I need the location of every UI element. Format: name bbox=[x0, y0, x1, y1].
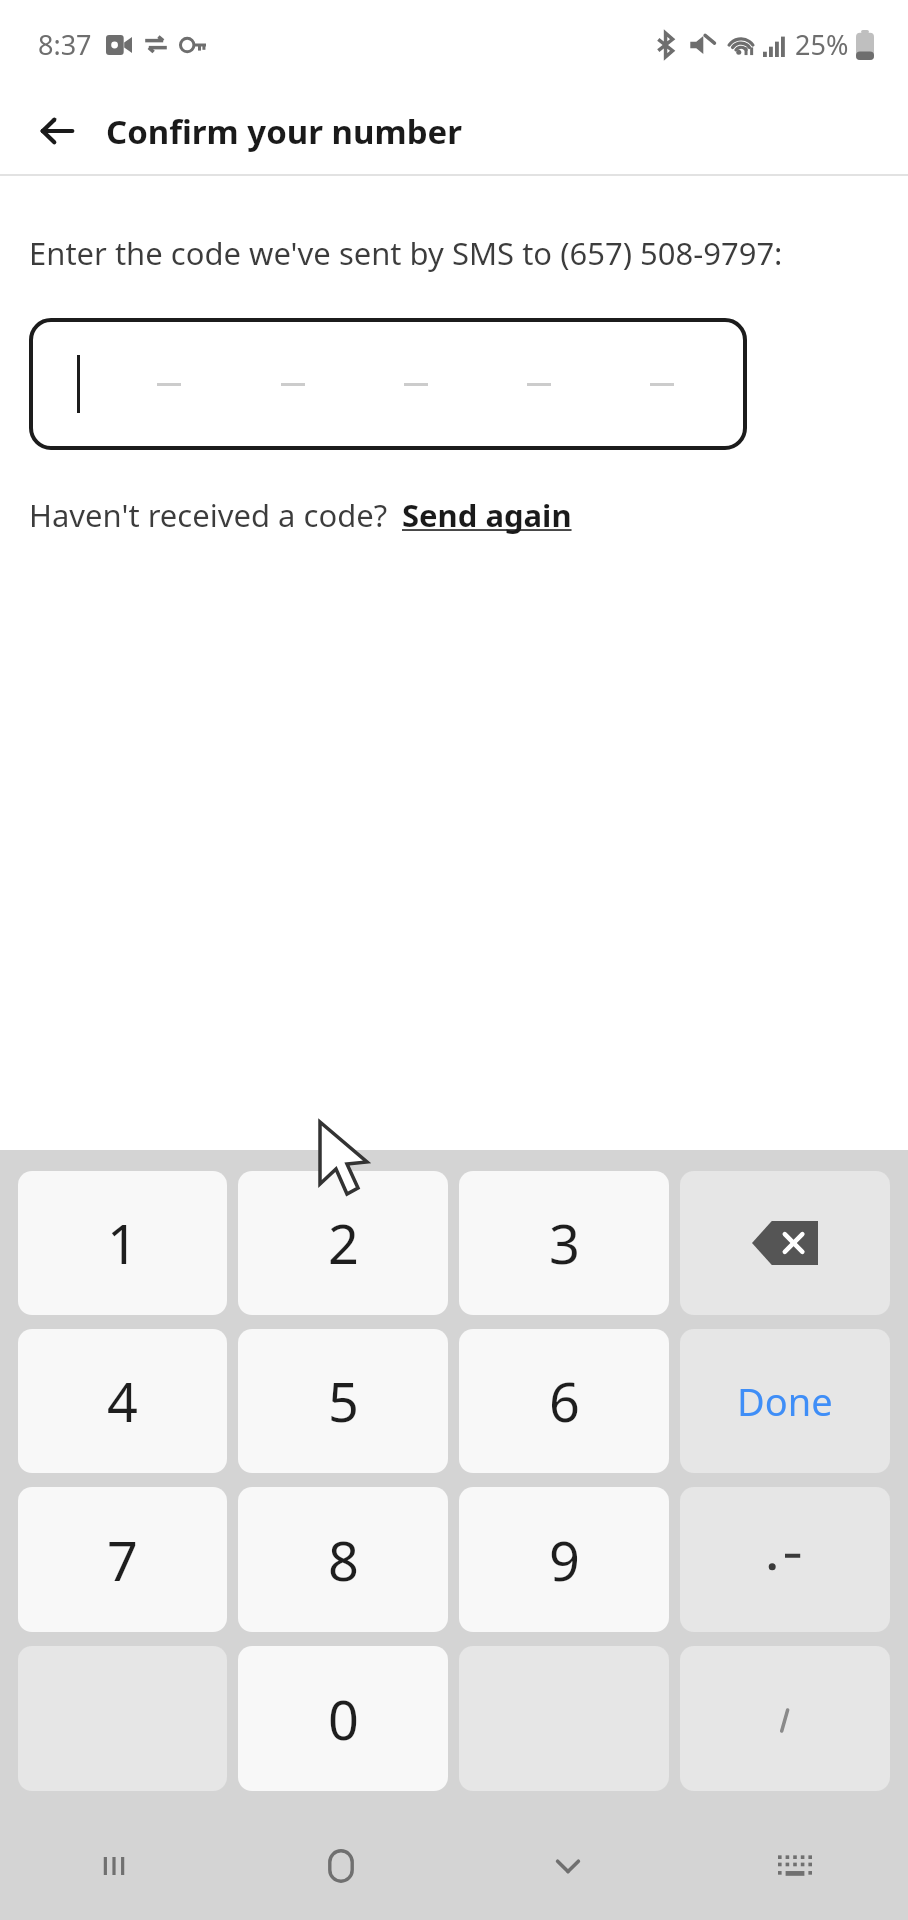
button[interactable]: 3 bbox=[459, 1171, 669, 1315]
button[interactable]: Hide keyboard bbox=[454, 1812, 681, 1920]
button[interactable]: 4 bbox=[18, 1329, 227, 1473]
button[interactable]: Switch keyboard bbox=[681, 1812, 908, 1920]
staticText: 8:37 bbox=[38, 26, 92, 63]
button[interactable]: 0 bbox=[238, 1646, 448, 1791]
staticText: Send again bbox=[402, 494, 572, 536]
button[interactable]: 8 bbox=[238, 1487, 448, 1632]
button[interactable]: 6 bbox=[459, 1329, 669, 1473]
staticText: 5 bbox=[328, 1364, 359, 1438]
button[interactable]: Backspace bbox=[680, 1171, 890, 1315]
staticText: 9 bbox=[549, 1523, 580, 1597]
staticText: Done bbox=[737, 1375, 833, 1427]
staticText: Haven't received a code? bbox=[29, 494, 388, 536]
staticText: Confirm your number bbox=[106, 109, 463, 154]
staticText: 6 bbox=[549, 1364, 580, 1438]
button[interactable]: 2 bbox=[238, 1171, 448, 1315]
staticText: 3 bbox=[549, 1206, 580, 1280]
button[interactable]: 5 bbox=[238, 1329, 448, 1473]
staticText: 7 bbox=[107, 1523, 138, 1597]
button[interactable]: Home bbox=[227, 1812, 454, 1920]
staticText: 4 bbox=[107, 1364, 138, 1438]
staticText: Enter the code we've sent by SMS to (657… bbox=[29, 232, 783, 274]
button[interactable]: Send again bbox=[402, 494, 572, 536]
staticText: 2 bbox=[328, 1206, 359, 1280]
staticText: 8 bbox=[328, 1523, 359, 1597]
button[interactable]: Recents bbox=[0, 1812, 227, 1920]
button[interactable] bbox=[29, 318, 747, 450]
staticText: 1 bbox=[107, 1206, 138, 1280]
button[interactable]: Back bbox=[26, 100, 88, 162]
button[interactable]: 1 bbox=[18, 1171, 227, 1315]
button[interactable]: Comma bbox=[680, 1646, 890, 1791]
staticText: 25% bbox=[795, 26, 849, 63]
button[interactable]: 7 bbox=[18, 1487, 227, 1632]
button[interactable]: Done bbox=[680, 1329, 890, 1473]
staticText: 0 bbox=[328, 1682, 359, 1756]
button[interactable]: 9 bbox=[459, 1487, 669, 1632]
button[interactable]: Dot dash bbox=[680, 1487, 890, 1632]
